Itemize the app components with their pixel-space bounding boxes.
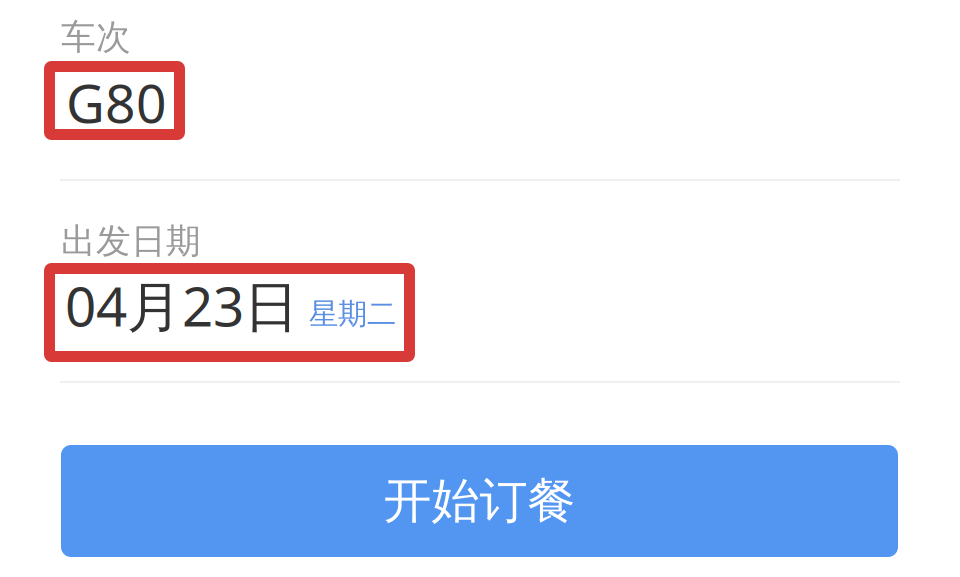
staticText: 04月23日	[65, 269, 299, 342]
staticText: G80	[66, 67, 167, 138]
staticText: 星期二	[309, 296, 396, 332]
button[interactable]: 开始订餐	[61, 445, 898, 557]
staticText: 出发日期	[61, 220, 201, 263]
staticText: 开始订餐	[383, 471, 575, 530]
staticText: 车次	[61, 16, 131, 59]
